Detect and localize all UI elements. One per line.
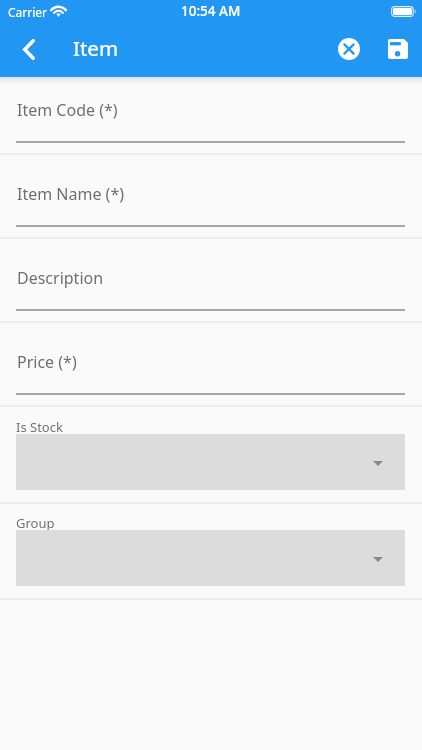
button[interactable]: Price (*) <box>0 329 422 413</box>
button[interactable]: Back <box>5 25 53 73</box>
staticText: Item Code (*) <box>17 99 118 121</box>
staticText: Price (*) <box>17 351 77 373</box>
staticText: 10:54 AM <box>181 2 241 20</box>
button[interactable]: Item Name (*) <box>0 161 422 245</box>
staticText: Description <box>17 267 104 289</box>
staticText: Is Stock <box>16 418 63 436</box>
staticText: Group <box>16 514 55 532</box>
button[interactable]: Description <box>0 245 422 329</box>
button[interactable]: Save <box>376 27 420 71</box>
button[interactable]: Item Code (*) <box>0 77 422 161</box>
staticText: Carrier <box>8 4 48 20</box>
staticText: Item <box>73 34 119 62</box>
staticText: Item Name (*) <box>17 183 125 205</box>
button[interactable]: Cancel <box>321 27 376 71</box>
